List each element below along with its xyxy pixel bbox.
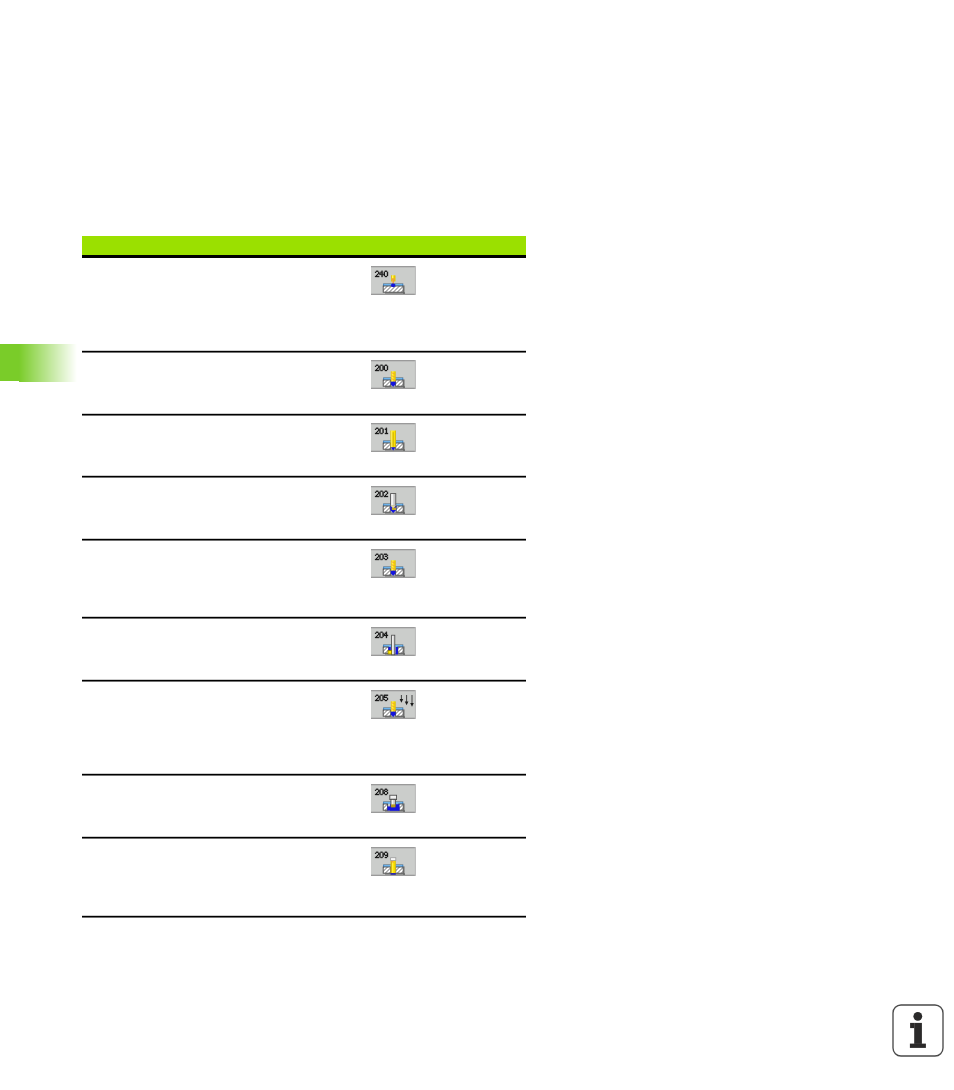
button[interactable]: Cycle 204 — [371, 627, 416, 656]
button[interactable]: Cycle 209 — [371, 847, 416, 876]
button[interactable]: Cycle 240 — [371, 266, 416, 295]
button[interactable]: Cycle 203 — [371, 549, 416, 578]
button[interactable]: Cycle 202 — [371, 486, 416, 515]
button[interactable]: Information — [893, 1005, 943, 1056]
button[interactable]: Cycle 200 — [371, 360, 416, 389]
button[interactable]: Cycle table header — [82, 236, 526, 256]
button[interactable]: Cycle 201 — [371, 423, 416, 452]
button[interactable]: Cycle 208 — [371, 784, 416, 813]
button[interactable]: Cycle 205 — [371, 690, 416, 719]
